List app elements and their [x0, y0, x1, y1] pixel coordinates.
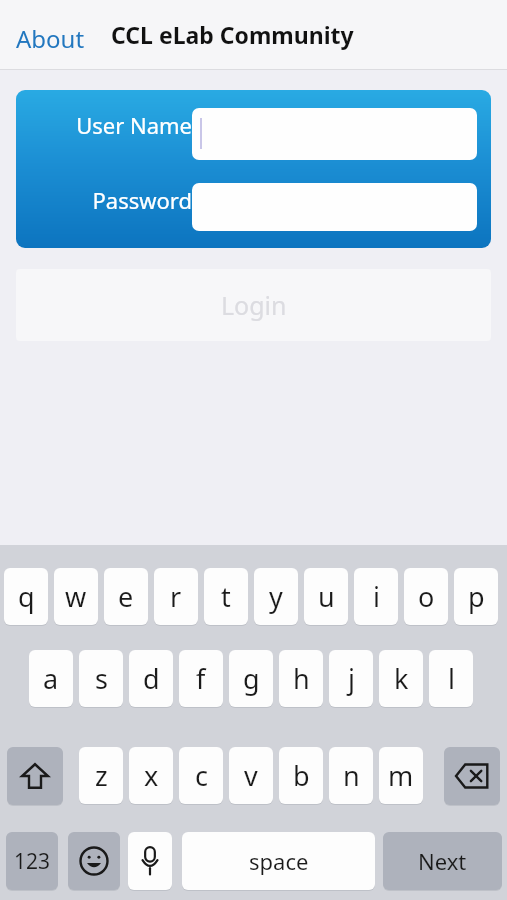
button[interactable]: a: [29, 650, 73, 707]
staticText: c: [195, 757, 208, 794]
button[interactable]: Dictate: [128, 832, 172, 890]
staticText: h: [293, 660, 310, 697]
staticText: u: [318, 578, 335, 615]
staticText: w: [65, 578, 87, 615]
button[interactable]: z: [79, 747, 123, 804]
button[interactable]: i: [354, 568, 398, 625]
staticText: x: [144, 757, 159, 794]
staticText: t: [221, 578, 231, 615]
button[interactable]: r: [154, 568, 198, 625]
staticText: space: [249, 846, 309, 876]
button[interactable]: q: [4, 568, 48, 625]
staticText: About: [16, 22, 85, 55]
button[interactable]: b: [279, 747, 323, 804]
button[interactable]: e: [104, 568, 148, 625]
staticText: e: [118, 578, 134, 615]
staticText: Login: [221, 288, 287, 322]
button[interactable]: u: [304, 568, 348, 625]
button[interactable]: o: [404, 568, 448, 625]
button[interactable]: f: [179, 650, 223, 707]
button[interactable]: About: [14, 20, 87, 57]
staticText: y: [269, 578, 283, 615]
staticText: d: [143, 660, 160, 697]
staticText: s: [95, 660, 108, 697]
staticText: v: [244, 757, 258, 794]
button[interactable]: s: [79, 650, 123, 707]
button[interactable]: p: [454, 568, 498, 625]
button[interactable]: [192, 183, 477, 231]
staticText: Next: [418, 846, 467, 876]
staticText: f: [196, 660, 206, 697]
staticText: z: [95, 757, 108, 794]
staticText: j: [348, 660, 355, 697]
staticText: g: [243, 660, 260, 697]
button[interactable]: j: [329, 650, 373, 707]
button[interactable]: Emoji: [68, 832, 120, 890]
button[interactable]: w: [54, 568, 98, 625]
staticText: n: [343, 757, 360, 794]
staticText: l: [448, 660, 455, 697]
button[interactable]: g: [229, 650, 273, 707]
staticText: CCL eLab Community: [111, 19, 354, 50]
button[interactable]: 123: [6, 832, 58, 890]
staticText: i: [373, 578, 380, 615]
staticText: r: [170, 578, 182, 615]
button[interactable]: [192, 108, 477, 160]
button[interactable]: v: [229, 747, 273, 804]
button[interactable]: k: [379, 650, 423, 707]
button[interactable]: space: [182, 832, 375, 890]
staticText: b: [293, 757, 310, 794]
button[interactable]: Shift: [7, 747, 63, 805]
button[interactable]: m: [379, 747, 423, 804]
button[interactable]: l: [429, 650, 473, 707]
button[interactable]: n: [329, 747, 373, 804]
button[interactable]: Next: [383, 832, 502, 890]
staticText: o: [418, 578, 435, 615]
staticText: q: [18, 578, 35, 615]
staticText: m: [388, 757, 414, 794]
staticText: Password: [40, 185, 192, 215]
staticText: k: [394, 660, 409, 697]
staticText: p: [468, 578, 485, 615]
button[interactable]: t: [204, 568, 248, 625]
button[interactable]: x: [129, 747, 173, 804]
button[interactable]: y: [254, 568, 298, 625]
button[interactable]: c: [179, 747, 223, 804]
staticText: a: [43, 660, 59, 697]
staticText: 123: [14, 847, 51, 876]
button[interactable]: Delete: [444, 747, 500, 805]
staticText: User Name: [40, 110, 192, 140]
button[interactable]: d: [129, 650, 173, 707]
button[interactable]: h: [279, 650, 323, 707]
